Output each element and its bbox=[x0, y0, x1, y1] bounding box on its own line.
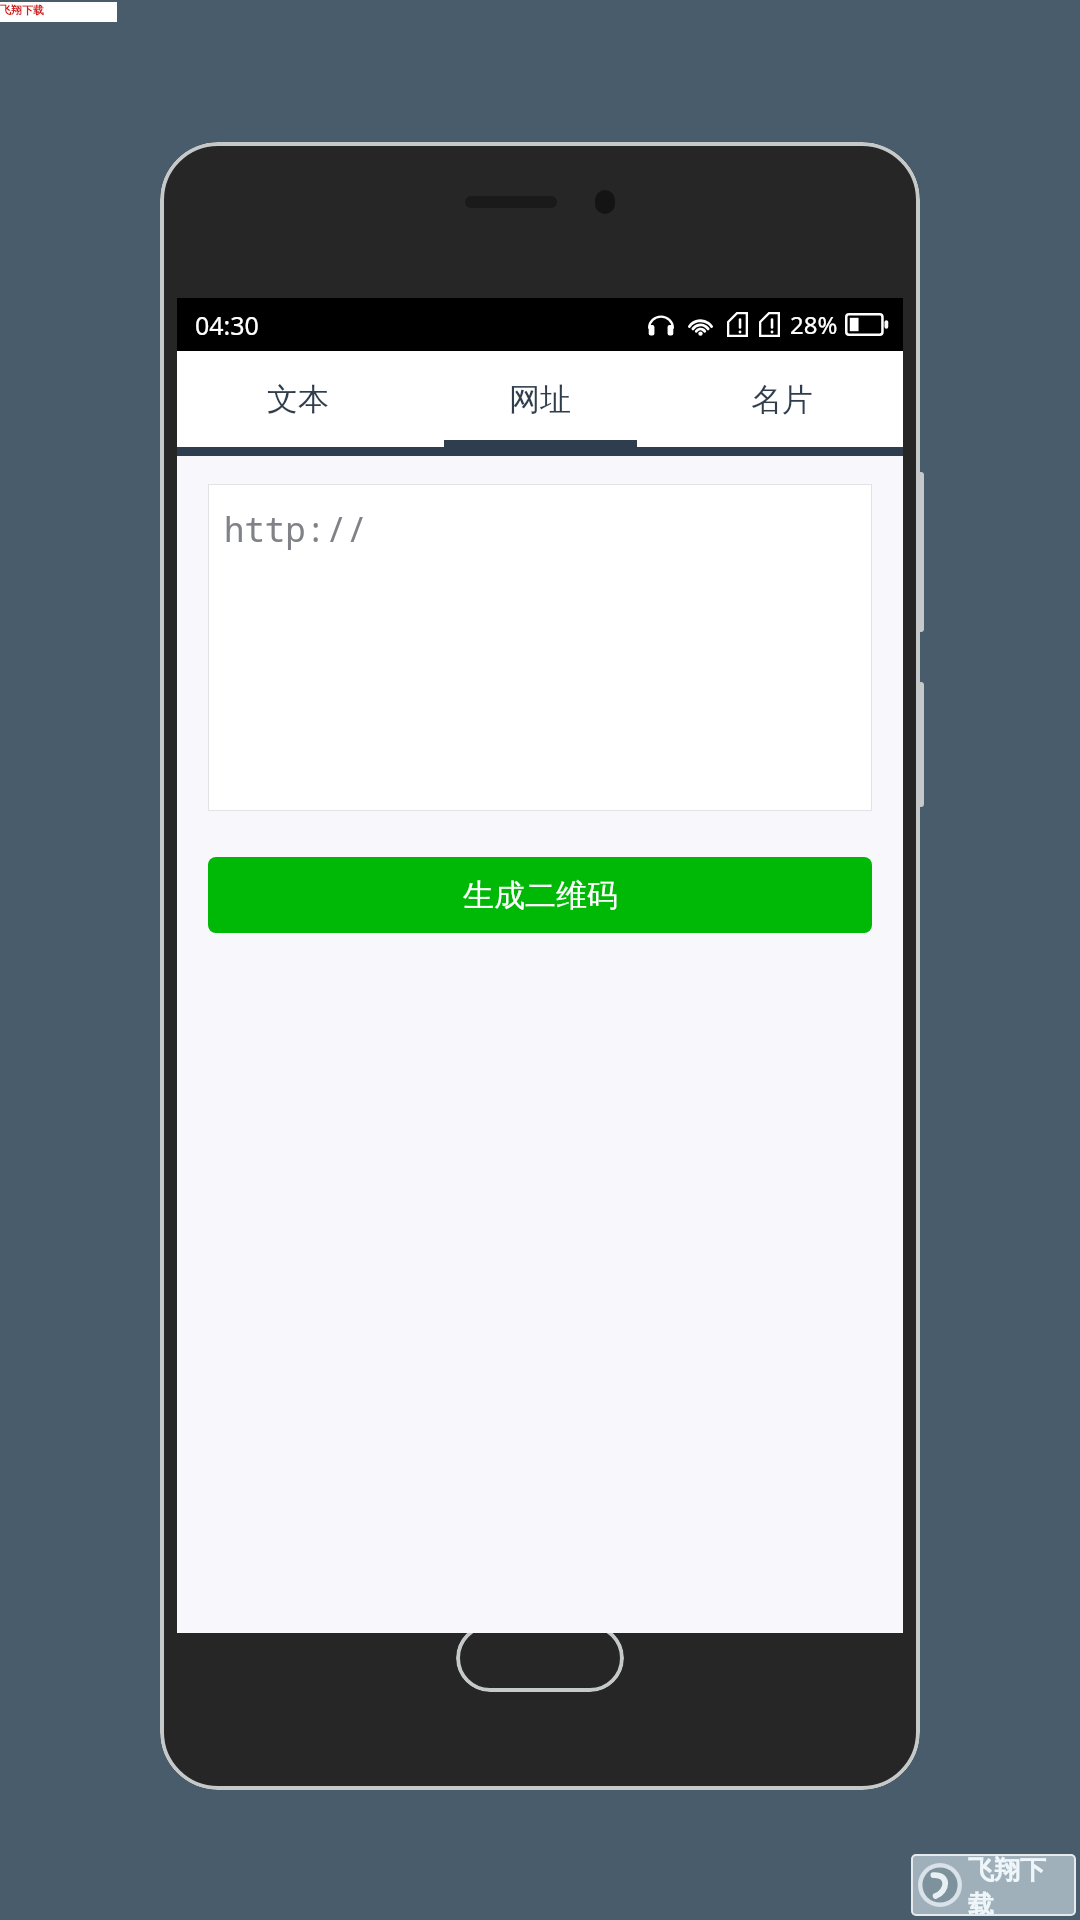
staticText: 飞翔下载 bbox=[968, 1854, 1069, 1916]
staticText: 名片 bbox=[751, 380, 813, 419]
staticText: http:// bbox=[224, 506, 367, 552]
button[interactable]: 网址 bbox=[419, 351, 661, 447]
button[interactable]: http:// bbox=[208, 484, 872, 811]
staticText: 网址 bbox=[509, 380, 571, 419]
button[interactable]: 名片 bbox=[661, 351, 903, 447]
staticText: 文本 bbox=[267, 380, 329, 419]
staticText: 生成二维码 bbox=[463, 876, 618, 915]
staticText: 28% bbox=[790, 308, 838, 341]
button[interactable]: Home bbox=[456, 1624, 624, 1692]
staticText: 飞翔下载 www.FXXZ.com bbox=[0, 2, 117, 22]
button[interactable]: 生成二维码 bbox=[208, 857, 872, 933]
staticText: 04:30 bbox=[195, 308, 259, 342]
button[interactable]: 文本 bbox=[177, 351, 419, 447]
